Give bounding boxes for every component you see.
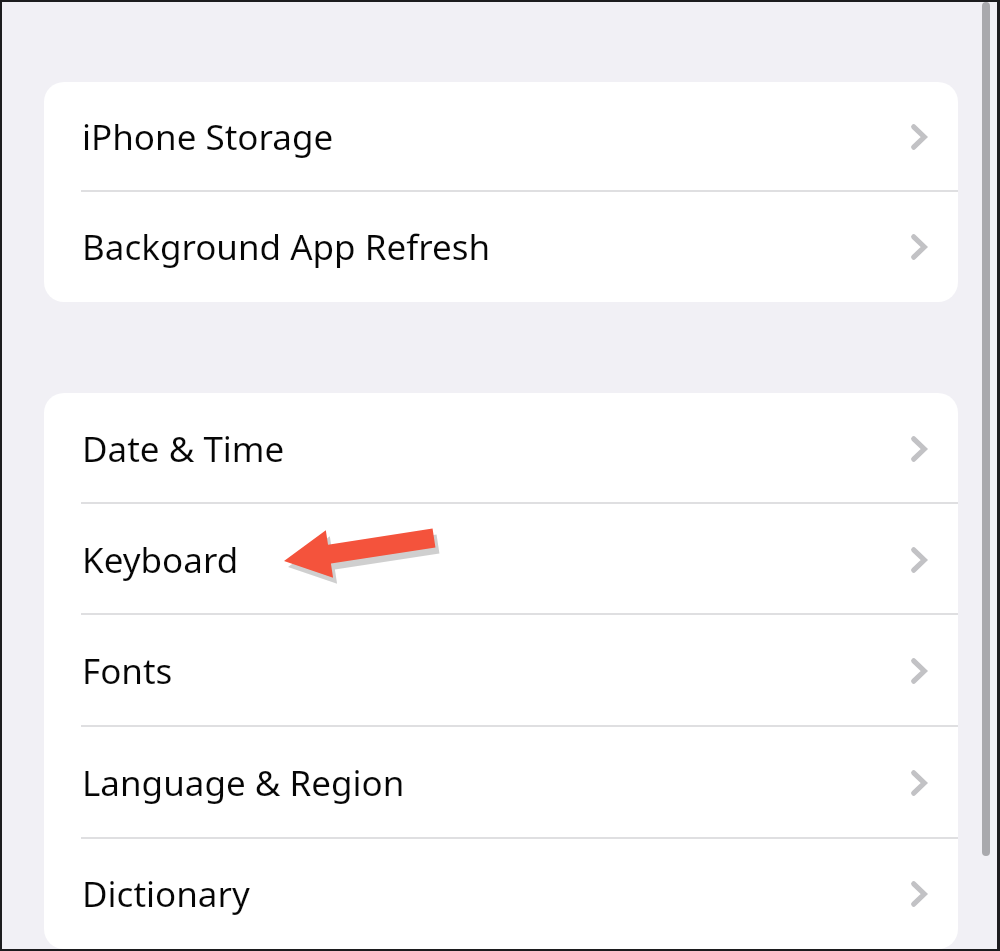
other: Open Date & Time	[907, 433, 931, 465]
button[interactable]: Fonts	[44, 615, 958, 727]
button[interactable]: iPhone Storage	[44, 82, 958, 192]
staticText: Keyboard	[82, 536, 239, 584]
staticText: Language & Region	[82, 759, 405, 807]
button[interactable]: Keyboard	[44, 504, 958, 615]
staticText: iPhone Storage	[82, 113, 334, 161]
other: Open Fonts	[907, 655, 931, 687]
other: Open iPhone Storage	[907, 121, 931, 153]
button[interactable]: Language & Region	[44, 727, 958, 839]
staticText: Background App Refresh	[82, 223, 491, 271]
staticText: Fonts	[82, 647, 173, 695]
other: Open Keyboard	[907, 544, 931, 576]
other: Open Background App Refresh	[907, 231, 931, 263]
button[interactable]: Background App Refresh	[44, 192, 958, 302]
other: Open Language & Region	[907, 767, 931, 799]
button[interactable]: Dictionary	[44, 839, 958, 949]
button[interactable]: Date & Time	[44, 393, 958, 504]
other: Open Dictionary	[907, 878, 931, 910]
staticText: Date & Time	[82, 425, 285, 473]
staticText: Dictionary	[82, 870, 250, 918]
